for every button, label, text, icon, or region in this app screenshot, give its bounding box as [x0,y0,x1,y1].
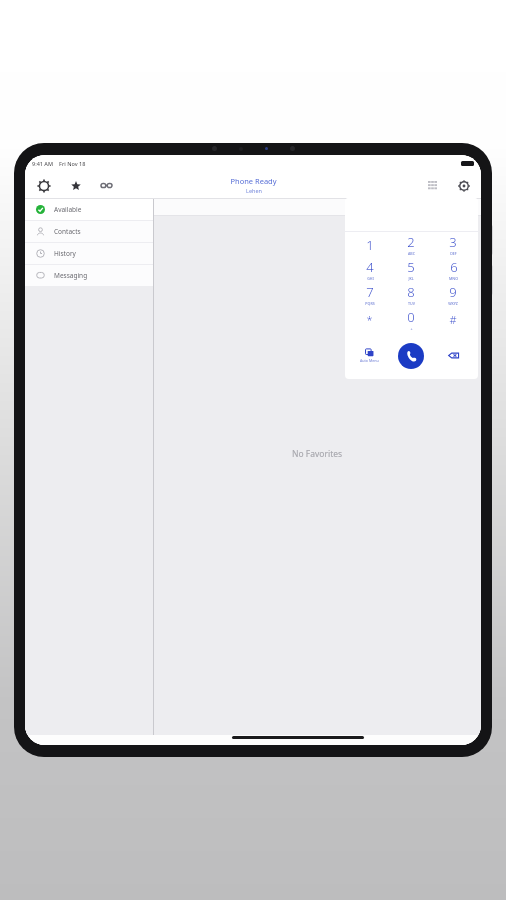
button[interactable]: 8 [390,282,432,307]
button[interactable]: History [25,243,153,264]
button[interactable]: 5 [390,257,432,282]
button[interactable]: Backspace [432,332,474,379]
staticText: History [54,249,76,258]
staticText: Phone Ready [230,176,277,186]
button[interactable]: Messaging [25,265,153,286]
button[interactable]: 9 [432,282,474,307]
staticText: 7 [366,283,374,301]
staticText: Messaging [54,271,88,280]
staticText: DEF [450,251,457,256]
staticText: 2 [407,233,415,251]
staticText: Available [54,205,82,214]
button[interactable]: Settings spinner [35,177,52,194]
button[interactable]: Favorites [68,178,83,193]
staticText: Auto Menu [360,358,379,363]
staticText: 5 [407,258,415,276]
button[interactable]: 2 [390,232,432,257]
button[interactable]: Available [25,199,153,220]
staticText: 4 [366,258,374,276]
staticText: TUV [408,301,415,306]
staticText: WXYZ [448,301,458,306]
button[interactable]: 3 [432,232,474,257]
button[interactable]: Contacts [25,221,153,242]
staticText: 6 [450,258,458,276]
staticText: * [366,312,373,327]
staticText: 8 [407,283,415,301]
button[interactable]: Keypad [425,178,440,193]
staticText: ABC [408,251,415,256]
staticText: 3 [449,233,457,251]
staticText: JKL [408,276,414,281]
staticText: GHI [367,276,374,281]
staticText: # [449,312,457,327]
staticText: 9:41 AM [32,160,54,167]
staticText: Fri Nov 18 [59,160,86,167]
button[interactable]: 1 [349,232,390,257]
button[interactable]: Link [99,178,114,193]
button[interactable]: Auto Menu [349,332,390,379]
button[interactable]: # [432,307,474,332]
staticText: Lehen [246,187,262,194]
button[interactable]: 4 [349,257,390,282]
button[interactable]: * [349,307,390,332]
button[interactable]: 6 [432,257,474,282]
button[interactable]: Settings [456,178,471,193]
button[interactable]: 7 [349,282,390,307]
staticText: PQRS [365,301,375,306]
staticText: + [410,326,413,331]
staticText: 1 [366,236,374,254]
staticText: MNO [449,276,458,281]
button[interactable]: 0 [390,307,432,332]
staticText: 0 [407,308,415,326]
staticText: Contacts [54,227,81,236]
staticText: 9 [449,283,457,301]
staticText: No Favorites [292,448,343,460]
button[interactable]: Call [390,332,432,379]
